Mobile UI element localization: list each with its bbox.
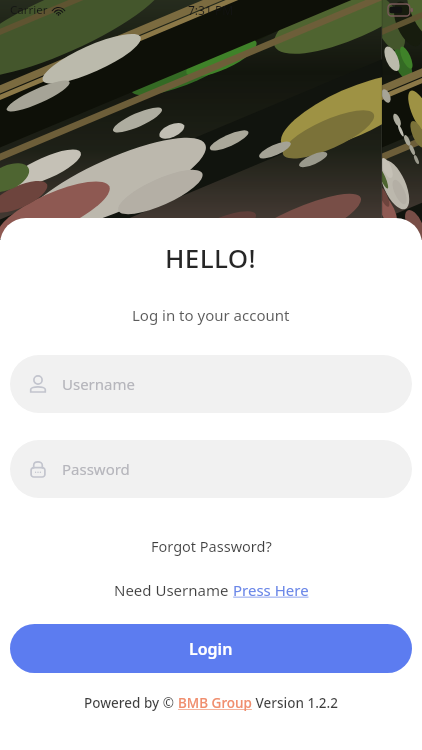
button[interactable]: Press Here — [233, 580, 309, 600]
button[interactable]: BMB Group — [178, 694, 252, 712]
staticText: Press Here — [233, 580, 309, 600]
staticText: HELLO! — [165, 240, 257, 275]
staticText: Username — [62, 374, 135, 394]
staticText: Forgot Password? — [151, 536, 272, 556]
staticText: Carrier — [10, 2, 48, 18]
staticText: Powered by © — [84, 694, 178, 712]
staticText: BMB Group — [178, 694, 252, 712]
staticText: Password — [62, 459, 130, 479]
button[interactable]: Username — [10, 355, 412, 413]
button[interactable]: Forgot Password? — [145, 533, 278, 559]
staticText: Version 1.2.2 — [252, 694, 338, 712]
staticText: Need Username — [114, 580, 233, 600]
button[interactable]: Password — [10, 440, 412, 498]
staticText: 7:31 PM — [188, 2, 234, 18]
staticText: Log in to your account — [132, 305, 290, 325]
button[interactable]: Login — [10, 624, 412, 673]
staticText: Login — [189, 638, 233, 660]
